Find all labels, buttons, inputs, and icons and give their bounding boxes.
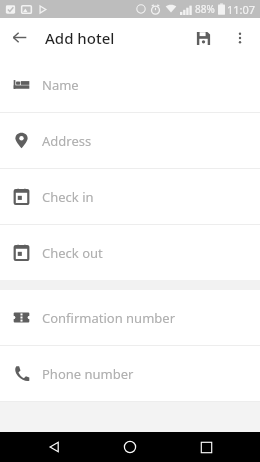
staticText: 11:07: [227, 2, 256, 17]
button[interactable]: Check out: [0, 225, 260, 280]
button[interactable]: Confirmation number: [0, 290, 260, 345]
button[interactable]: Phone number: [0, 346, 260, 401]
button[interactable]: Address: [0, 113, 260, 168]
staticText: Check out: [42, 244, 103, 262]
button[interactable]: Name: [0, 57, 260, 112]
staticText: Name: [42, 76, 79, 94]
button[interactable]: Back: [0, 18, 39, 57]
button[interactable]: Save: [184, 19, 222, 57]
button[interactable]: More options: [222, 20, 258, 56]
staticText: Address: [42, 132, 92, 150]
staticText: 88%: [195, 2, 215, 16]
button[interactable]: Check in: [0, 169, 260, 224]
staticText: Confirmation number: [42, 309, 176, 327]
button[interactable]: Home: [108, 432, 152, 462]
staticText: Phone number: [42, 365, 134, 383]
button[interactable]: Recent apps: [184, 432, 228, 462]
staticText: Add hotel reservati…: [45, 28, 184, 48]
staticText: Check in: [42, 188, 94, 206]
button[interactable]: Back: [32, 432, 76, 462]
